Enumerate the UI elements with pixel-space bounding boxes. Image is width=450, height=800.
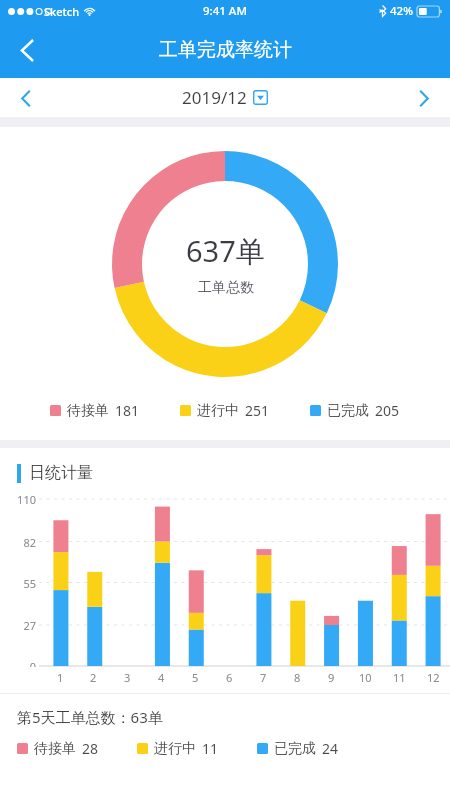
staticText: 10 [359,670,372,685]
staticText: 2 [90,670,97,685]
button[interactable]: Previous month [8,80,44,116]
staticText: 9 [328,670,335,685]
button[interactable]: 已完成 [310,401,400,420]
staticText: 251 [245,401,270,420]
staticText: 日统计量 [29,463,93,483]
staticText: 第5天工单总数：63单 [17,707,163,727]
staticText: 3 [124,670,131,685]
staticText: 待接单 [34,740,76,758]
staticText: 6 [226,670,233,685]
staticText: 2019/12 [182,86,247,109]
staticText: 已完成 [274,740,316,758]
staticText: 0 [0,659,36,667]
staticText: 24 [322,739,339,758]
staticText: 27 [0,618,36,633]
staticText: 4 [158,670,165,685]
button[interactable]: Next month [406,80,442,116]
staticText: 11 [393,670,406,685]
staticText: 5 [192,670,199,685]
button[interactable]: 进行中 [180,401,270,420]
staticText: 28 [82,739,99,758]
button[interactable]: 2019/12 [176,82,274,113]
staticText: 7 [260,670,267,685]
staticText: 12 [427,670,440,685]
button[interactable]: 已完成 [257,739,339,758]
staticText: 已完成 [327,402,369,420]
staticText: 205 [375,401,400,420]
staticText: 进行中 [154,740,196,758]
staticText: 工单总数 [198,279,254,297]
staticText: 55 [0,576,36,591]
staticText: 11 [202,739,219,758]
staticText: 637单 [186,231,265,271]
staticText: 82 [0,535,36,550]
staticText: 8 [294,670,301,685]
staticText: Sketch [44,4,80,19]
staticText: 工单完成率统计 [159,38,292,62]
button[interactable]: 进行中 [137,739,219,758]
staticText: 1 [57,670,64,685]
staticText: 42% [390,3,413,19]
button[interactable]: 待接单 [50,401,140,420]
staticText: 181 [115,401,140,420]
staticText: 110 [0,492,36,507]
staticText: 进行中 [197,402,239,420]
staticText: 待接单 [67,402,109,420]
button[interactable]: Back [5,28,49,72]
staticText: 9:41 AM [203,3,247,19]
button[interactable]: 待接单 [17,739,99,758]
